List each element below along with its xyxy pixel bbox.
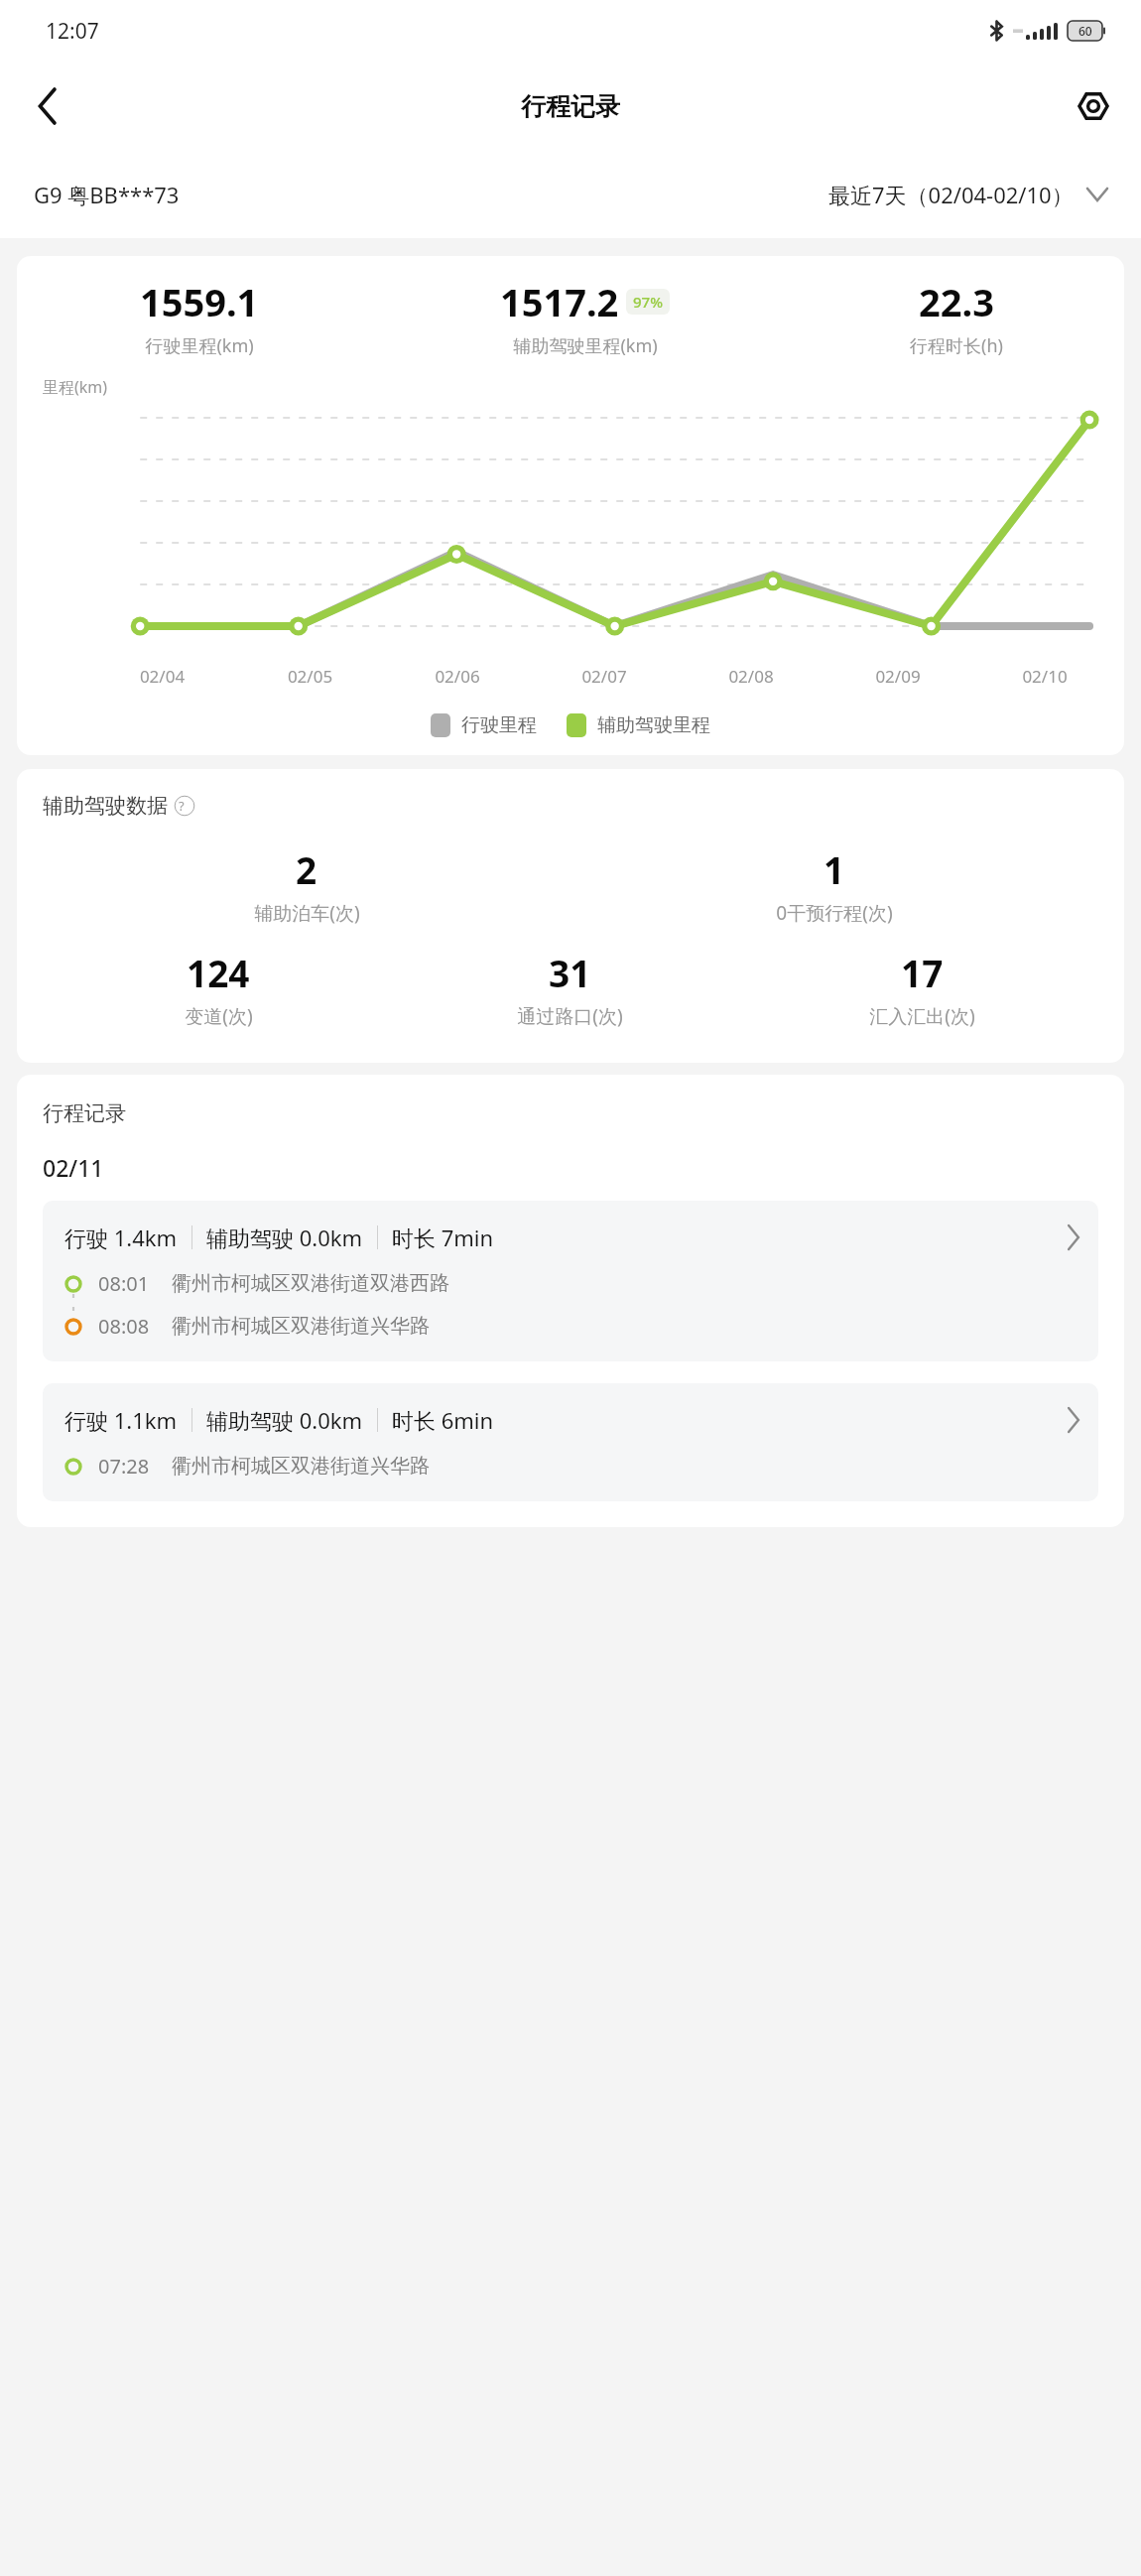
staticText: 2 (296, 844, 317, 894)
staticText: 02/10 (971, 665, 1118, 688)
staticText: 97% (633, 292, 663, 312)
staticText: 时长 6min (392, 1405, 494, 1435)
staticText: 02/05 (236, 665, 384, 688)
staticText: 行驶 1.4km (64, 1223, 178, 1252)
staticText: 通过路口(次) (517, 1003, 623, 1029)
staticText: 辅助驾驶 0.0km (206, 1223, 363, 1252)
staticText: 衢州市柯城区双港街道兴华路 (172, 1454, 430, 1479)
staticText: 07:28 (98, 1453, 150, 1480)
staticText: 变道(次) (185, 1003, 253, 1029)
staticText: 行驶里程(km) (145, 333, 254, 358)
staticText: 辅助驾驶 0.0km (206, 1405, 363, 1435)
staticText: 行程记录 (521, 91, 620, 122)
button[interactable]: 最近7天（02/04-02/10） (824, 172, 1111, 217)
staticText: 1 (824, 844, 845, 894)
staticText: 02/08 (678, 665, 824, 688)
staticText: 22.3 (919, 276, 994, 327)
staticText: 60 (1078, 23, 1092, 39)
staticText: 17 (901, 948, 944, 997)
staticText: 里程(km) (43, 376, 108, 398)
button[interactable]: 行驶 1.1km (43, 1383, 1098, 1501)
staticText: 辅助驾驶数据 (43, 793, 168, 819)
staticText: 行驶 1.1km (64, 1405, 178, 1435)
staticText: ? (179, 797, 185, 815)
staticText: 08:01 (98, 1270, 150, 1297)
staticText: 31 (549, 948, 591, 997)
staticText: 02/04 (88, 665, 236, 688)
button[interactable]: Settings (1062, 74, 1125, 138)
staticText: 辅助驾驶里程 (597, 713, 710, 737)
staticText: 1559.1 (140, 276, 259, 327)
staticText: 衢州市柯城区双港街道兴华路 (172, 1314, 430, 1339)
button[interactable]: 1559.1 (17, 256, 1124, 755)
staticText: 02/06 (384, 665, 531, 688)
staticText: 02/09 (824, 665, 971, 688)
staticText: 汇入汇出(次) (869, 1003, 975, 1029)
staticText: 行程记录 (43, 1100, 126, 1126)
staticText: 02/07 (531, 665, 678, 688)
staticText: 辅助驾驶里程(km) (513, 333, 658, 358)
staticText: 行驶里程 (461, 713, 537, 737)
staticText: 08:08 (98, 1313, 150, 1340)
staticText: 衢州市柯城区双港街道双港西路 (172, 1271, 449, 1296)
button[interactable]: 辅助驾驶数据 (17, 769, 1124, 1063)
staticText: 0干预行程(次) (776, 900, 893, 926)
staticText: 行程时长(h) (910, 333, 1003, 358)
staticText: 1517.2 (500, 276, 619, 327)
staticText: 最近7天（02/04-02/10） (828, 180, 1074, 209)
button[interactable]: Back (16, 74, 79, 138)
staticText: 02/11 (43, 1152, 104, 1183)
staticText: 时长 7min (392, 1223, 494, 1252)
staticText: 辅助泊车(次) (254, 900, 360, 926)
button[interactable]: 行驶 1.4km (43, 1201, 1098, 1361)
staticText: G9 粤BB***73 (34, 180, 180, 209)
staticText: 1,000 (25, 395, 124, 396)
staticText: 12:07 (46, 17, 99, 46)
button[interactable]: G9 粤BB***73 (30, 172, 184, 217)
staticText: 124 (187, 948, 250, 997)
